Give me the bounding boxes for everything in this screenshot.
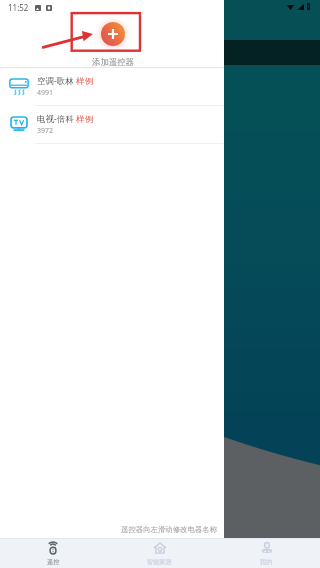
staticText: 智能家居 [147,558,172,566]
staticText: 4991 [37,88,54,98]
button[interactable]: 电视-倍科 样例 [0,106,224,143]
staticText: 11:52 [8,2,29,13]
staticText: 电视-倍科 样例 [37,113,94,125]
staticText: 空调-歌林 样例 [37,75,94,87]
staticText: 遥控 [47,558,60,566]
button[interactable]: 添加遥控器 [101,22,125,46]
staticText: 我的 [260,558,273,566]
button[interactable]: 我的 [213,538,320,568]
staticText: 添加遥控器 [92,57,134,68]
button[interactable]: 空调-歌林 样例 [0,68,224,105]
staticText: 3972 [37,126,54,136]
staticText: 遥控器向左滑动修改电器名称 [121,525,218,534]
button[interactable]: 智能家居 [106,538,213,568]
button[interactable]: 遥控 [0,538,106,568]
